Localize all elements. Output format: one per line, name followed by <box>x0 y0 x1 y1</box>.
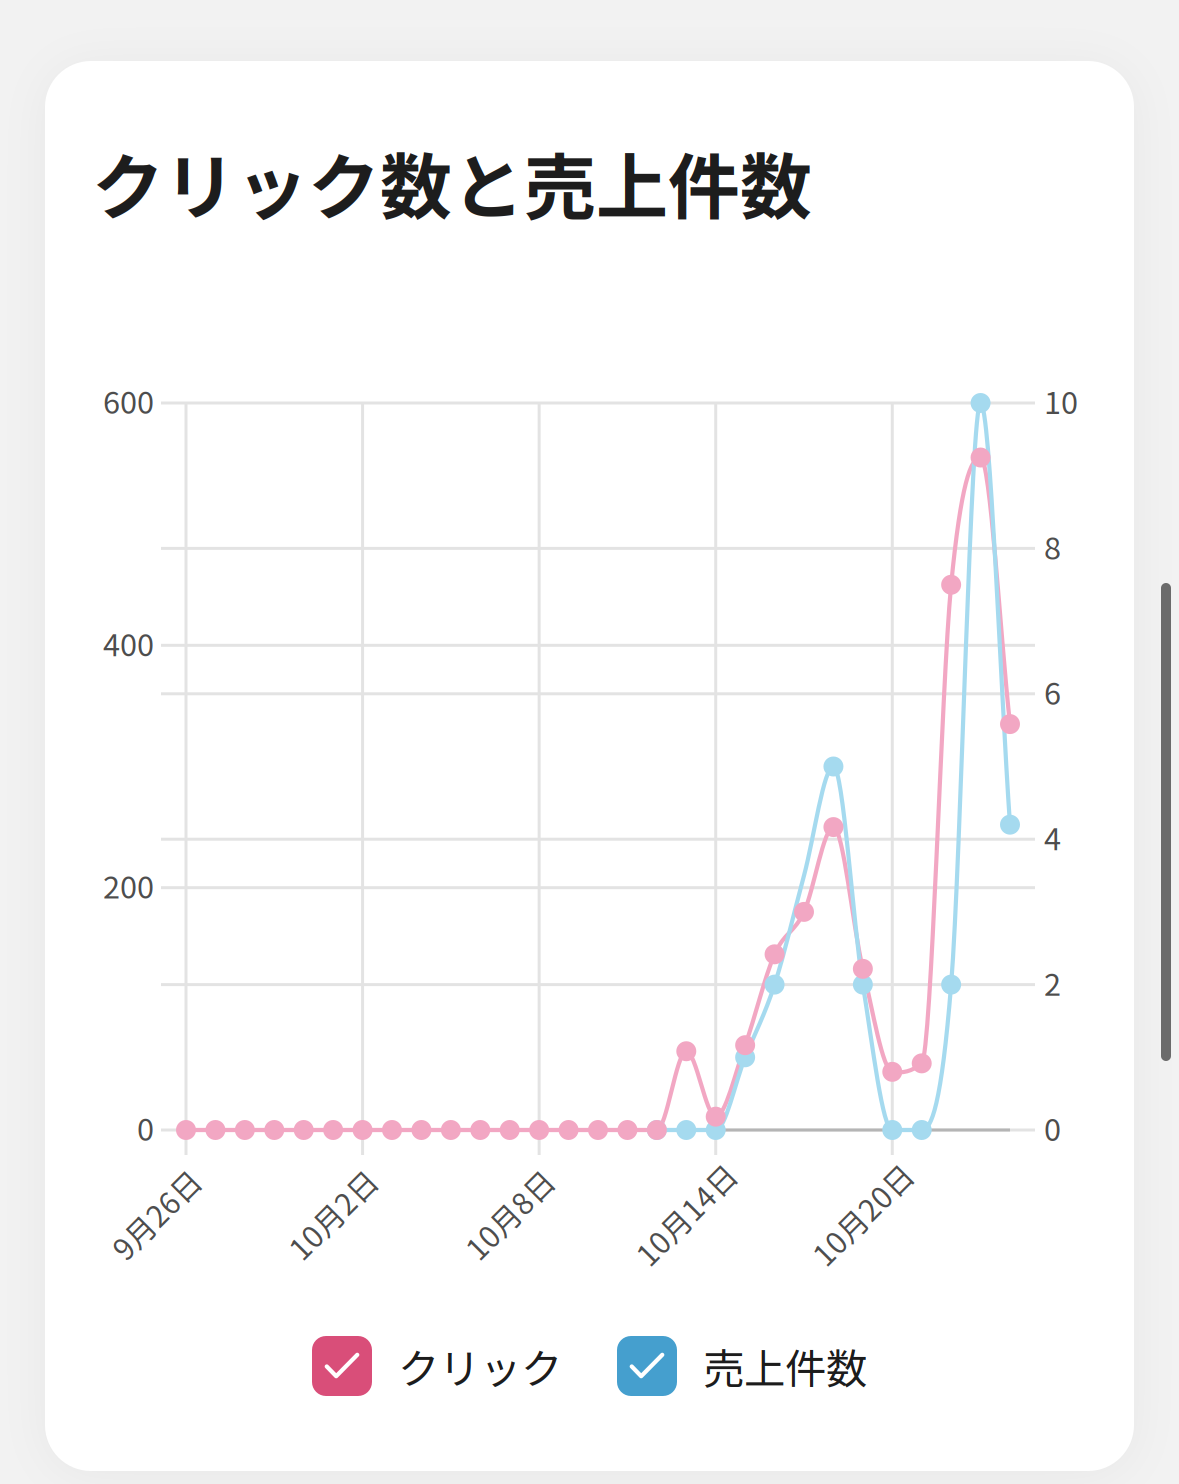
staticText: 10 <box>1044 378 1078 423</box>
staticText: 0 <box>1044 1105 1061 1150</box>
staticText: 10月2日 <box>277 1192 388 1236</box>
staticText: 10月20日 <box>798 1192 926 1236</box>
staticText: 10月8日 <box>454 1192 565 1236</box>
staticText: 600 <box>103 378 154 423</box>
staticText: 8 <box>1044 524 1061 568</box>
button[interactable]: クリック <box>312 1336 562 1396</box>
staticText: 0 <box>137 1105 154 1150</box>
staticText: クリック数と売上件数 <box>92 130 812 234</box>
staticText: 9月26日 <box>100 1192 211 1236</box>
staticText: 売上件数 <box>703 1336 867 1396</box>
staticText: 200 <box>103 863 154 907</box>
staticText: 2 <box>1044 960 1061 1004</box>
staticText: クリック <box>398 1336 562 1396</box>
button[interactable]: 売上件数 <box>617 1336 867 1396</box>
staticText: 10月14日 <box>622 1192 750 1236</box>
staticText: 400 <box>103 621 154 665</box>
staticText: 6 <box>1044 669 1061 714</box>
staticText: 4 <box>1044 815 1061 859</box>
